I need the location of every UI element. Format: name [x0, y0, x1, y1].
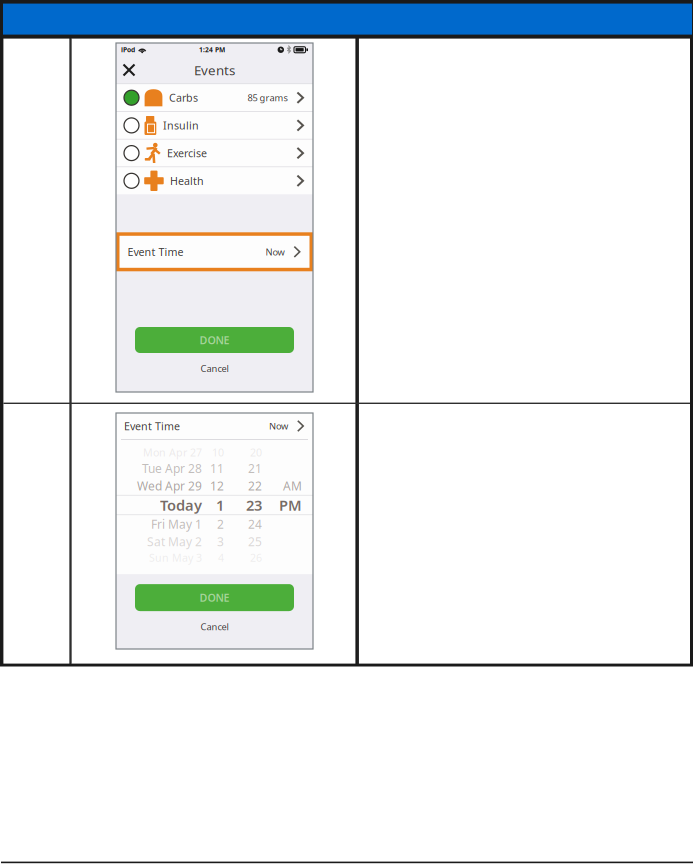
button[interactable]: Cancel [135, 361, 294, 376]
staticText: 1:24 PM [199, 45, 225, 54]
staticText: Cancel [200, 620, 228, 633]
button[interactable]: Close [116, 57, 142, 83]
staticText: 2 [217, 516, 224, 532]
button[interactable]: Event Time [116, 413, 313, 439]
staticText: Event Time [124, 419, 180, 433]
staticText: 10 [212, 445, 224, 459]
staticText: Tue Apr 28 [142, 460, 202, 476]
staticText: Cancel [200, 362, 228, 375]
staticText: 26 [250, 550, 262, 565]
staticText: 20 [250, 445, 262, 459]
staticText: DONE [199, 590, 229, 605]
staticText: Now [269, 420, 288, 432]
staticText: 23 [246, 495, 262, 515]
staticText: 24 [248, 516, 262, 532]
staticText: 12 [210, 478, 224, 494]
staticText: Fri May 1 [151, 516, 202, 532]
staticText: Today [160, 495, 202, 515]
button[interactable]: Exercise [116, 140, 313, 167]
staticText: 22 [248, 478, 262, 494]
button[interactable]: Event Time [116, 232, 313, 271]
staticText: Carbs [169, 91, 198, 105]
staticText: Sun May 3 [149, 550, 202, 565]
staticText: Health [170, 174, 204, 188]
staticText: Insulin [163, 118, 199, 132]
staticText: 85 grams [247, 91, 287, 104]
staticText: Exercise [167, 146, 207, 160]
button[interactable]: DONE [135, 584, 294, 611]
staticText: 11 [210, 460, 224, 476]
staticText: iPod [121, 45, 135, 54]
staticText: 3 [217, 534, 224, 549]
staticText: Mon Apr 27 [143, 445, 202, 459]
staticText: Now [265, 246, 284, 258]
staticText: Wed Apr 29 [137, 478, 202, 494]
staticText: DONE [199, 333, 229, 347]
staticText: Sat May 2 [147, 534, 202, 549]
staticText: 25 [248, 534, 262, 549]
button[interactable]: Cancel [135, 619, 294, 634]
button[interactable]: Health [116, 167, 313, 194]
button[interactable]: DONE [135, 327, 294, 353]
staticText: 4 [218, 550, 224, 565]
button[interactable]: Insulin [116, 112, 313, 139]
staticText: 21 [248, 460, 262, 476]
staticText: 1 [216, 495, 224, 515]
button[interactable]: Carbs [116, 84, 313, 111]
staticText: Event Time [127, 245, 183, 259]
staticText: AM [283, 478, 302, 494]
staticText: PM [279, 495, 302, 515]
staticText: Events [194, 61, 235, 79]
